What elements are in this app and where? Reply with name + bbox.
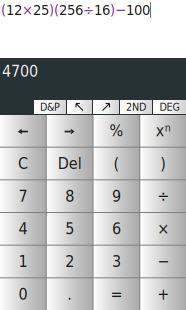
staticText: 100 (126, 1, 150, 19)
button[interactable]: − (140, 246, 186, 277)
button[interactable]: Move cursor right (47, 115, 93, 147)
button[interactable]: 0 (0, 278, 46, 310)
staticText: 8 (65, 187, 74, 205)
staticText: ÷ (157, 187, 169, 205)
button[interactable]: 8 (47, 180, 93, 212)
button[interactable]: 9 (93, 180, 139, 212)
staticText: ÷ (83, 1, 94, 19)
button[interactable]: % (93, 115, 139, 147)
staticText: 4700 (2, 62, 38, 81)
staticText: 5 (65, 219, 74, 238)
button[interactable]: x to the power n (140, 115, 186, 147)
button[interactable]: 7 (0, 180, 46, 212)
button[interactable]: ÷ (140, 180, 186, 212)
staticText: × (157, 219, 169, 238)
staticText: − (115, 1, 126, 19)
staticText: ) (110, 1, 115, 19)
staticText: ) (49, 1, 54, 19)
staticText: ( (1, 1, 6, 19)
staticText: 2 (65, 252, 74, 271)
button[interactable]: + (140, 278, 186, 310)
button[interactable]: 1 (0, 246, 46, 277)
button[interactable]: ) (140, 148, 186, 179)
button[interactable]: × (140, 213, 186, 245)
staticText: % (109, 121, 123, 140)
staticText: ( (54, 1, 59, 19)
staticText: DEG (159, 101, 179, 113)
button[interactable]: Previous expression (67, 100, 92, 114)
staticText: 2ND (126, 101, 146, 113)
staticText: Del (58, 154, 82, 173)
button[interactable]: = (93, 278, 139, 310)
button[interactable]: Del (47, 148, 93, 179)
button[interactable]: . (47, 278, 93, 310)
button[interactable]: ( (93, 148, 139, 179)
button[interactable]: C (0, 148, 46, 179)
staticText: 9 (112, 187, 121, 205)
staticText: n (165, 121, 171, 134)
staticText: 256 (59, 1, 83, 19)
staticText: 7 (18, 187, 27, 205)
button[interactable]: 3 (93, 246, 139, 277)
staticText: 12 (6, 1, 22, 19)
staticText: 1 (18, 252, 27, 271)
staticText: − (157, 252, 169, 271)
staticText: 3 (112, 252, 121, 271)
button[interactable]: DEG (153, 100, 186, 114)
button[interactable]: 5 (47, 213, 93, 245)
button[interactable]: D&P (34, 100, 66, 114)
button[interactable]: 6 (93, 213, 139, 245)
staticText: + (157, 285, 169, 303)
staticText: D&P (40, 101, 60, 113)
staticText: 0 (18, 285, 27, 303)
staticText: × (22, 1, 33, 19)
staticText: 4 (18, 219, 27, 238)
staticText: 6 (112, 219, 121, 238)
staticText: ( (113, 154, 119, 173)
staticText: x (156, 121, 165, 140)
staticText: C (18, 154, 28, 173)
staticText: 16 (94, 1, 110, 19)
button[interactable]: 2ND (120, 100, 152, 114)
button[interactable]: 4 (0, 213, 46, 245)
staticText: 25 (33, 1, 49, 19)
button[interactable]: 2 (47, 246, 93, 277)
staticText: . (67, 285, 72, 303)
button[interactable]: Next expression (93, 100, 119, 114)
staticText: ) (160, 154, 166, 173)
button[interactable]: Move cursor left (0, 115, 46, 147)
staticText: = (110, 285, 122, 303)
